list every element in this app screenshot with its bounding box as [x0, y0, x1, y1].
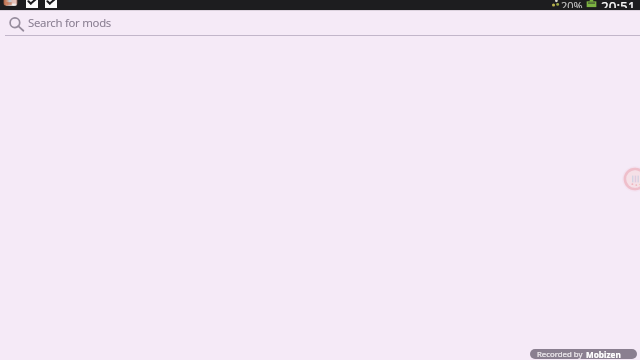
staticText: 20%: [561, 0, 583, 8]
staticText: Search for mods: [28, 15, 111, 31]
staticText: Mobizen: [586, 349, 621, 359]
staticText: 20:51: [601, 0, 636, 8]
button[interactable]: Search for mods: [0, 11, 640, 41]
button[interactable]: Floating app shortcut: [622, 166, 640, 192]
staticText: Recorded by: [537, 349, 583, 359]
